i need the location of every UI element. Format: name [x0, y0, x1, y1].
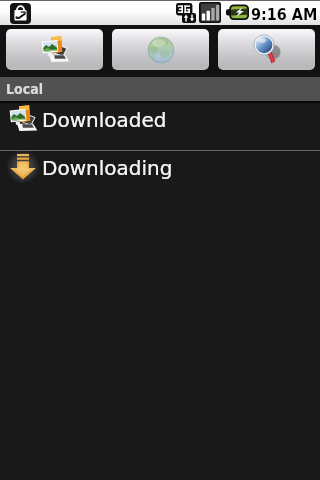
button[interactable]: Gallery — [6, 29, 103, 70]
staticText: Downloading — [42, 156, 173, 179]
button[interactable]: Downloaded — [0, 103, 320, 150]
staticText: Local — [6, 81, 43, 97]
button[interactable]: Downloading — [0, 151, 320, 198]
button[interactable]: Browser — [112, 29, 209, 70]
staticText: 9:16 AM — [251, 5, 318, 24]
staticText: Downloaded — [42, 108, 167, 131]
button[interactable]: Search — [218, 29, 315, 70]
